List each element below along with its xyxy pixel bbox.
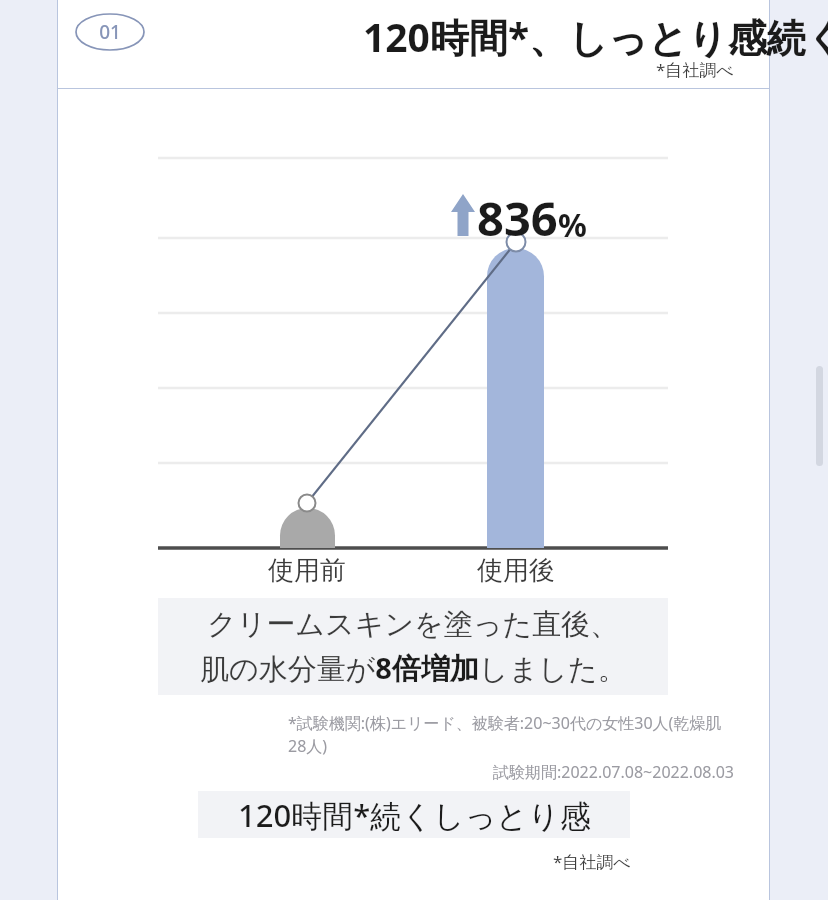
button[interactable]: Section 01	[76, 14, 144, 50]
staticText: *試験機関:(株)エリード、被験者:20~30代の女性30人(乾燥肌28人)	[288, 712, 735, 757]
staticText: 使用前	[268, 554, 346, 587]
staticText: %	[558, 203, 587, 247]
staticText: 使用後	[477, 554, 555, 587]
staticText: 試験期間:2022.07.08~2022.08.03	[493, 761, 735, 783]
staticText: 120時間*、しっとり感続く	[363, 10, 828, 63]
staticText: *自社調べ	[553, 850, 631, 873]
staticText: 120時間*続くしっとり感	[238, 794, 591, 836]
staticText: 836	[477, 186, 558, 250]
button[interactable]: 120時間*続くしっとり感	[198, 791, 630, 838]
staticText: 01	[99, 19, 121, 45]
staticText: クリームスキンを塗った直後、	[207, 606, 620, 643]
staticText: 肌の水分量が8倍増加しました。	[200, 648, 627, 688]
button[interactable]: Section 01	[58, 0, 769, 88]
staticText: *自社調べ	[656, 58, 734, 81]
button[interactable]: クリームスキンを塗った直後、	[158, 598, 668, 695]
